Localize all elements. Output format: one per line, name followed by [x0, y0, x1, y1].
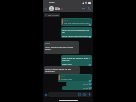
- staticText: You have to take it and I will be: [62, 56, 91, 62]
- button[interactable]: Tap to view: [45, 13, 59, 17]
- staticText: 00:35: [49, 1, 55, 4]
- staticText: Chae: [45, 42, 50, 45]
- staticText: hour and I will be back at 1: [62, 34, 91, 37]
- button[interactable]: Camera: [83, 93, 86, 96]
- staticText: But I'm not available for an: [62, 28, 91, 34]
- button[interactable]: Video call: [80, 5, 86, 12]
- button[interactable]: Voice message: [88, 93, 91, 96]
- staticText: If you don't want to be involved: [45, 67, 79, 73]
- staticText: Alia: [55, 7, 61, 11]
- staticText: Alia: [64, 19, 68, 22]
- staticText: Are you coming tomorrow?: [64, 22, 90, 25]
- staticText: Alia: [61, 75, 65, 78]
- button[interactable]: Sticker: [78, 93, 81, 96]
- staticText: Is that okay: [61, 78, 72, 81]
- button[interactable]: Back: [43, 5, 49, 12]
- staticText: Yes I think that will it will work: [45, 45, 78, 51]
- button[interactable]: Add: [44, 93, 48, 97]
- staticText: Tap to view: [48, 14, 59, 17]
- button[interactable]: Call: [86, 5, 92, 12]
- staticText: 00:35: [83, 87, 89, 89]
- staticText: with you: [62, 62, 72, 65]
- staticText: 00:34: [83, 83, 89, 85]
